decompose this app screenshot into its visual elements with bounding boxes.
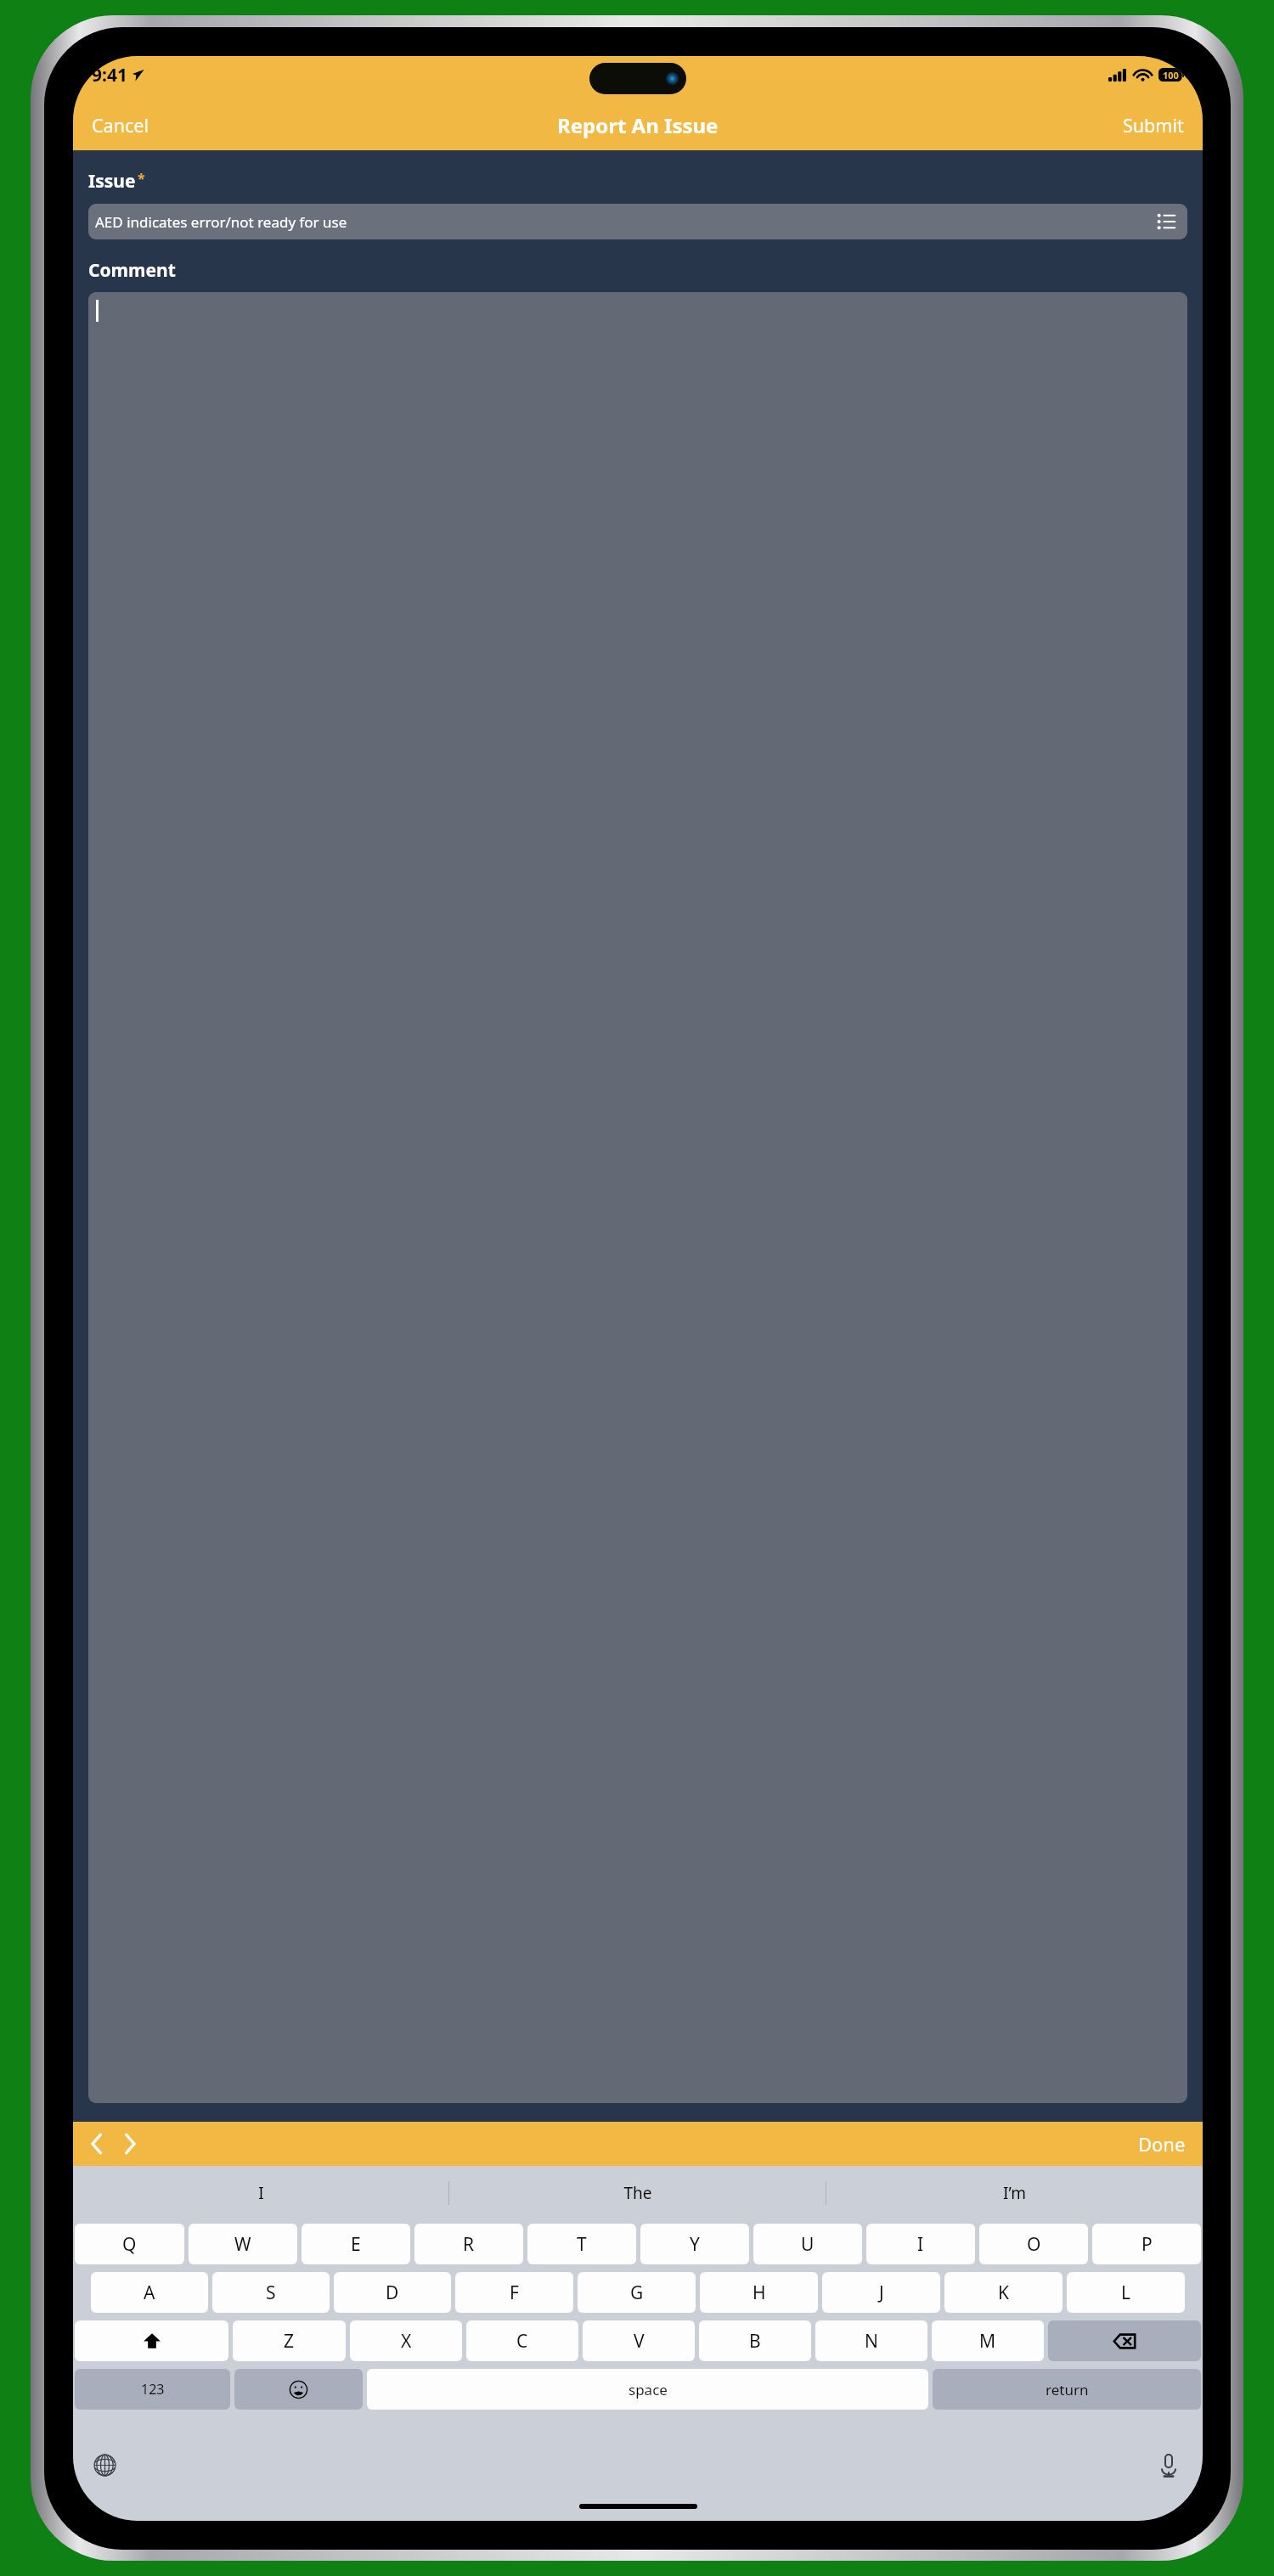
staticText: Done [1138,2131,1186,2157]
staticText: J [879,2281,884,2305]
staticText: 123 [141,2380,165,2399]
button[interactable]: Change keyboard language [88,2449,121,2482]
staticText: N [865,2329,878,2354]
button[interactable]: Emoji [234,2369,363,2410]
staticText: Report An Issue [557,111,719,139]
button[interactable]: Next field [117,2128,144,2160]
staticText: B [749,2329,761,2354]
staticText: W [234,2232,251,2257]
staticText: U [801,2232,815,2257]
button[interactable]: K [944,2272,1063,2313]
staticText: I [917,2232,924,2257]
staticText: M [979,2329,996,2354]
button[interactable]: I [73,2166,448,2220]
button[interactable]: L [1067,2272,1185,2313]
staticText: 100 [1163,69,1179,82]
button[interactable]: space [367,2369,928,2410]
staticText: Cancel [92,113,149,138]
staticText: O [1027,2232,1041,2257]
staticText: AED indicates error/not ready for use [95,212,347,232]
staticText: Submit [1123,113,1184,138]
button[interactable]: Cancel [82,108,158,143]
staticText: V [634,2329,645,2354]
button[interactable]: P [1092,2224,1201,2264]
button[interactable]: W [189,2224,297,2264]
button[interactable]: E [302,2224,410,2264]
staticText: T [577,2232,587,2257]
staticText: I [258,2182,264,2204]
staticText: space [629,2380,668,2399]
staticText: Issue [88,169,136,194]
button[interactable]: 123 [75,2369,230,2410]
button[interactable]: AED indicates error/not ready for use [88,204,1187,239]
button[interactable]: Done [1130,2127,1194,2161]
staticText: X [401,2329,412,2354]
button[interactable]: A [91,2272,208,2313]
button[interactable]: V [583,2320,695,2361]
button[interactable]: O [979,2224,1088,2264]
staticText: 9:41 [92,63,127,87]
staticText: P [1142,2232,1153,2257]
button[interactable]: J [822,2272,940,2313]
button[interactable]: I’m [826,2166,1203,2220]
staticText: S [266,2281,276,2305]
button[interactable]: R [414,2224,523,2264]
button[interactable]: The [449,2166,826,2220]
button[interactable]: G [578,2272,696,2313]
button[interactable]: return [933,2369,1201,2410]
button[interactable]: T [527,2224,636,2264]
staticText: L [1121,2281,1131,2305]
staticText: Y [690,2232,700,2257]
staticText: A [144,2281,155,2305]
button[interactable]: N [815,2320,927,2361]
button[interactable]: D [334,2272,451,2313]
button[interactable]: Z [233,2320,346,2361]
button[interactable]: Submit [1113,108,1193,143]
staticText: * [138,169,145,188]
staticText: The [623,2182,652,2204]
staticText: Z [284,2329,295,2354]
staticText: return [1046,2380,1089,2399]
button[interactable]: Q [75,2224,184,2264]
staticText: H [753,2281,766,2305]
button[interactable]: Dictation [1155,2449,1182,2483]
button[interactable]: I [866,2224,975,2264]
staticText: R [463,2232,475,2257]
staticText: K [998,2281,1009,2305]
button[interactable]: Y [640,2224,749,2264]
button[interactable]: C [466,2320,578,2361]
button[interactable]: Shift [75,2320,228,2361]
staticText: C [516,2329,528,2354]
button[interactable]: S [212,2272,330,2313]
staticText: E [351,2232,361,2257]
staticText: I’m [1003,2182,1026,2204]
staticText: G [630,2281,644,2305]
staticText: F [510,2281,519,2305]
button[interactable]: Delete [1048,2320,1201,2361]
button[interactable]: F [455,2272,573,2313]
button[interactable]: U [753,2224,862,2264]
button[interactable]: H [700,2272,818,2313]
button[interactable]: M [932,2320,1044,2361]
button[interactable]: X [350,2320,462,2361]
staticText: Comment [88,258,176,283]
button[interactable]: B [699,2320,811,2361]
button[interactable]: Previous field [83,2128,110,2160]
staticText: D [386,2281,399,2305]
staticText: Q [122,2232,137,2257]
